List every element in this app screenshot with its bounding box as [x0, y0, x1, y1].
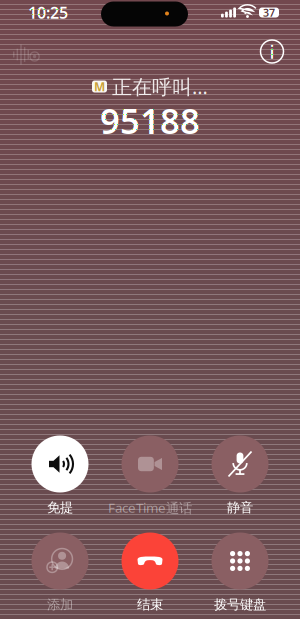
- button[interactable]: 添加: [15, 532, 105, 612]
- staticText: 10:25: [28, 2, 68, 23]
- staticText: 拨号键盘: [214, 596, 266, 613]
- button[interactable]: 结束: [105, 532, 195, 612]
- button[interactable]: 静音: [195, 435, 285, 515]
- staticText: 添加: [47, 596, 73, 613]
- staticText: 95188: [100, 97, 200, 143]
- staticText: 免提: [47, 499, 73, 516]
- staticText: 正在呼叫…: [112, 73, 208, 100]
- staticText: i: [269, 39, 274, 64]
- button[interactable]: 免提: [15, 435, 105, 515]
- staticText: 结束: [137, 596, 163, 613]
- button[interactable]: Call info: [255, 34, 289, 68]
- staticText: 静音: [227, 499, 253, 516]
- staticText: FaceTime通话: [108, 499, 192, 516]
- staticText: M: [94, 78, 105, 94]
- button[interactable]: 拨号键盘: [195, 532, 285, 612]
- staticText: 37: [263, 5, 275, 20]
- button[interactable]: FaceTime通话: [105, 435, 195, 515]
